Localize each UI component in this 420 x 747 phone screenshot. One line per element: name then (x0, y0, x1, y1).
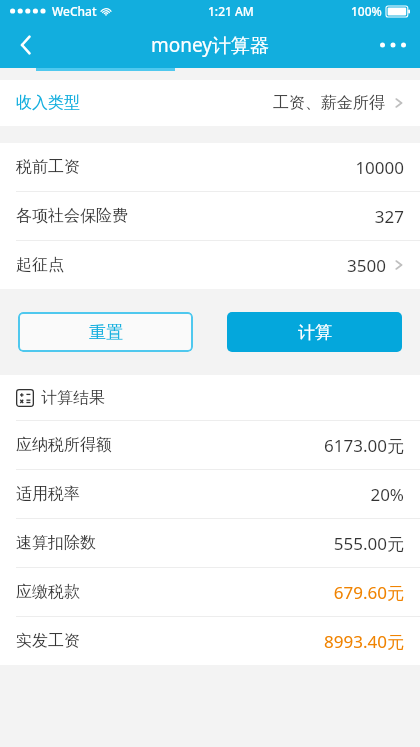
staticText: 应缴税款 (16, 582, 80, 602)
button[interactable]: 起征点 (0, 241, 420, 289)
staticText: 327 (374, 205, 404, 228)
staticText: 100% (351, 3, 382, 19)
staticText: 应纳税所得额 (16, 435, 112, 455)
staticText: 1:21 AM (208, 3, 254, 19)
staticText: money计算器 (151, 32, 270, 58)
staticText: 收入类型 (16, 93, 80, 113)
button[interactable]: 实发工资 (0, 617, 420, 665)
staticText: 6173.00元 (324, 434, 404, 457)
staticText: 速算扣除数 (16, 533, 96, 553)
button[interactable]: 适用税率 (0, 470, 420, 518)
button[interactable]: Back (0, 22, 52, 68)
staticText: 3500 (347, 254, 386, 277)
button[interactable]: 收入类型 (0, 80, 420, 126)
staticText: 8993.40元 (324, 630, 404, 653)
staticText: 10000 (355, 156, 404, 179)
button[interactable]: 税前工资 (0, 143, 420, 191)
staticText: 实发工资 (16, 631, 80, 651)
staticText: 税前工资 (16, 157, 80, 177)
button[interactable]: More options (366, 22, 420, 68)
staticText: 重置 (89, 322, 123, 343)
staticText: 起征点 (16, 255, 64, 275)
button[interactable]: 各项社会保险费 (0, 192, 420, 240)
staticText: 555.00元 (333, 532, 404, 555)
staticText: 各项社会保险费 (16, 206, 128, 226)
staticText: WeChat (52, 3, 97, 19)
staticText: 计算结果 (41, 388, 105, 408)
staticText: 679.60元 (333, 581, 404, 604)
staticText: 20% (370, 483, 404, 506)
button[interactable]: 计算 (227, 312, 402, 352)
staticText: 适用税率 (16, 484, 80, 504)
button[interactable]: 应纳税所得额 (0, 421, 420, 469)
button[interactable]: 速算扣除数 (0, 519, 420, 567)
button[interactable]: 重置 (18, 312, 193, 352)
button[interactable]: 应缴税款 (0, 568, 420, 616)
staticText: 计算 (298, 322, 332, 343)
staticText: 工资、薪金所得 (273, 93, 385, 113)
